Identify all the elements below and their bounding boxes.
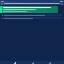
- button[interactable]: Explore: [30, 61, 35, 64]
- button[interactable]: [0, 6, 58, 13]
- button[interactable]: Home: [12, 61, 17, 64]
- button[interactable]: Profile: [47, 61, 52, 64]
- button[interactable]: [1, 17, 63, 19]
- button[interactable]: Search: [61, 3, 63, 5]
- button[interactable]: [1, 14, 63, 16]
